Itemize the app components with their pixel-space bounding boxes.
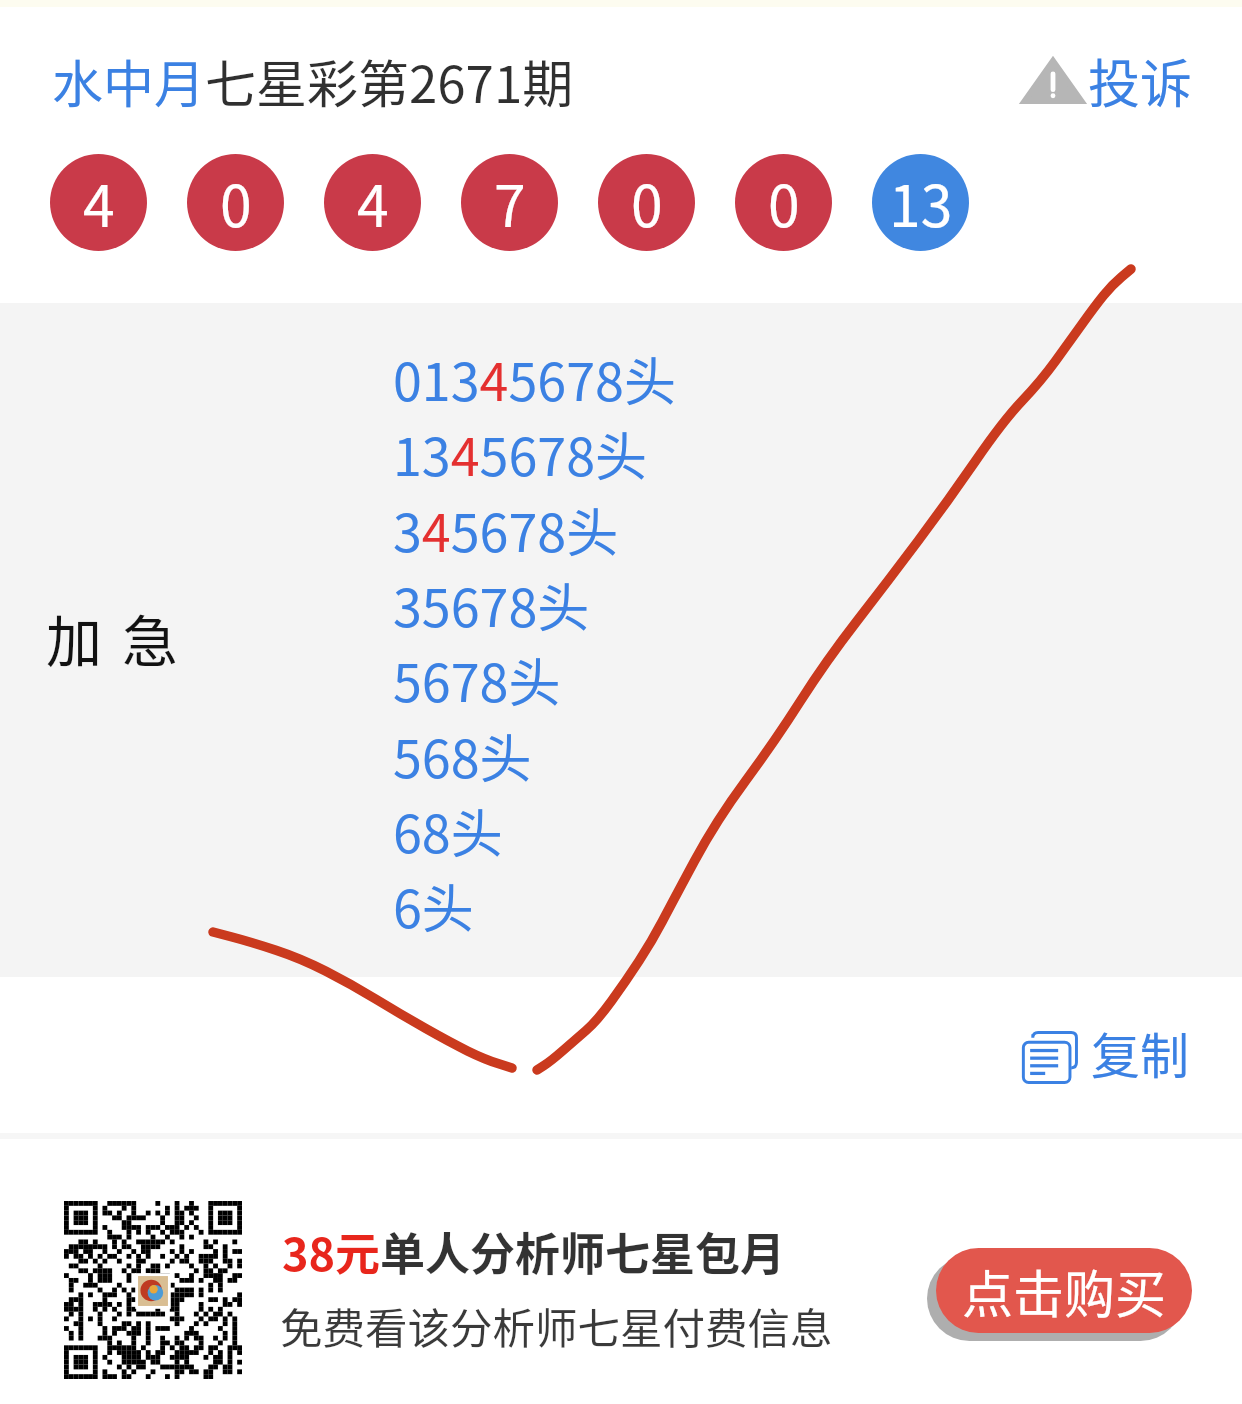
- staticText: 68头: [393, 793, 503, 868]
- staticText: 568头: [393, 718, 532, 793]
- staticText: 4: [83, 161, 115, 244]
- button[interactable]: 0: [598, 154, 695, 251]
- button[interactable]: 投诉: [1021, 43, 1193, 118]
- button[interactable]: 4: [50, 154, 147, 251]
- button[interactable]: 4: [324, 154, 421, 251]
- staticText: 急: [122, 597, 178, 678]
- other: 投诉: [1021, 55, 1085, 106]
- button[interactable]: 13: [872, 154, 969, 251]
- staticText: 0: [631, 161, 663, 244]
- staticText: 水中月七星彩第2671期: [52, 44, 574, 118]
- staticText: 0: [220, 161, 252, 244]
- staticText: 4: [357, 161, 389, 244]
- staticText: 345678头: [393, 492, 619, 567]
- staticText: 13: [889, 161, 953, 244]
- staticText: 7: [494, 161, 526, 244]
- staticText: 5678头: [393, 642, 561, 717]
- other: 二维码: [64, 1201, 242, 1381]
- button[interactable]: 0: [735, 154, 832, 251]
- other: 复制: [1021, 1024, 1080, 1085]
- staticText: 35678头: [393, 567, 590, 642]
- button[interactable]: 7: [461, 154, 558, 251]
- button[interactable]: 复制: [1021, 1024, 1190, 1095]
- staticText: 投诉: [1088, 43, 1193, 118]
- staticText: 6头: [393, 868, 474, 943]
- staticText: 01345678头: [393, 341, 676, 416]
- staticText: 复制: [1091, 1017, 1190, 1088]
- staticText: 点击购买: [962, 1254, 1167, 1328]
- button[interactable]: 0: [187, 154, 284, 251]
- button[interactable]: 点击购买: [936, 1248, 1192, 1333]
- staticText: 1345678头: [393, 416, 648, 491]
- staticText: 加: [46, 597, 102, 678]
- staticText: 0: [768, 161, 800, 244]
- staticText: 38元单人分析师七星包月: [282, 1219, 786, 1284]
- staticText: 免费看该分析师七星付费信息: [280, 1295, 833, 1357]
